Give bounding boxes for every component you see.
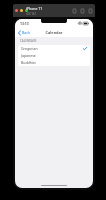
staticText: Buddhist	[21, 60, 36, 65]
staticText: CALENDARS	[20, 39, 37, 43]
staticText: Japanese	[21, 53, 36, 58]
button[interactable]: Toolbar action 0	[72, 8, 77, 14]
button[interactable]: Toolbar action 2	[88, 8, 93, 14]
button[interactable]: Gregorian	[18, 45, 90, 52]
staticText: Gregorian	[21, 46, 38, 51]
button[interactable]: Close	[15, 9, 18, 12]
button[interactable]: Back	[18, 30, 30, 35]
staticText: Calendar	[45, 30, 63, 35]
button[interactable]: Buddhist	[18, 59, 90, 66]
button[interactable]: Japanese	[18, 52, 90, 59]
staticText: 13:13	[20, 21, 29, 26]
staticText: Back	[22, 30, 30, 35]
staticText: iPhone 11	[26, 6, 43, 11]
staticText: iOS 16.1	[26, 12, 37, 16]
button[interactable]: Toolbar action 1	[80, 8, 85, 14]
button[interactable]: Minimize	[20, 9, 23, 12]
button[interactable]: Maximize	[25, 9, 28, 12]
